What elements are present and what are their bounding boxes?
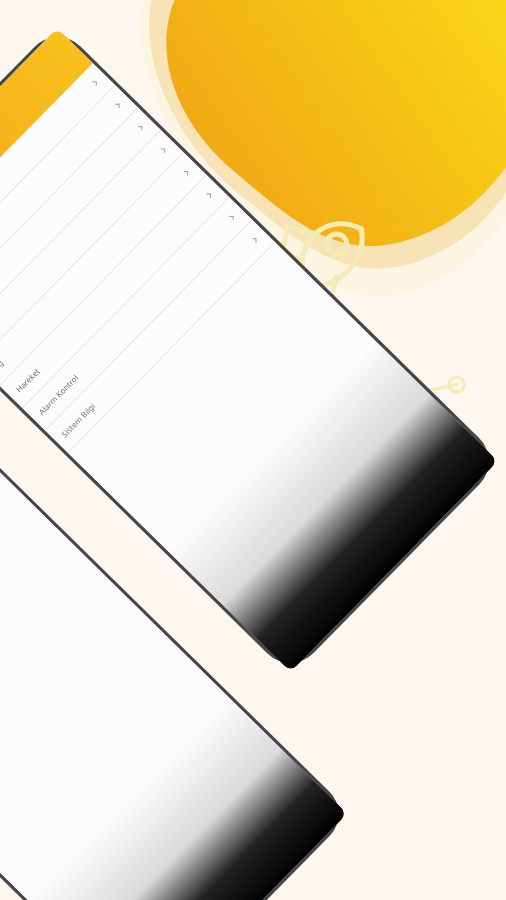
other: Open Alarm Kontrol xyxy=(227,212,237,222)
button[interactable]: Sistem Bilgi xyxy=(45,220,275,453)
other: Open xyxy=(136,123,146,132)
staticText: Alarm Kontrol xyxy=(36,371,81,417)
staticText: Sistem Bilgi xyxy=(59,400,97,439)
other: Open Hareket xyxy=(204,190,214,200)
button[interactable]: Open xyxy=(0,85,138,318)
button[interactable]: Open xyxy=(0,108,161,341)
button[interactable] xyxy=(0,28,93,274)
button[interactable]: Alarm Kontrol xyxy=(22,197,252,430)
other: Open xyxy=(90,78,100,88)
staticText: Hareket xyxy=(13,365,42,394)
other: Open Ağ xyxy=(182,167,191,177)
button[interactable]: Kayıt xyxy=(0,130,184,363)
button[interactable]: Hareket xyxy=(0,175,229,408)
button[interactable]: Open xyxy=(0,63,115,296)
other: Open xyxy=(113,100,123,110)
other: Open Kayıt xyxy=(159,145,169,155)
other: Open Sistem Bilgi xyxy=(250,235,260,245)
button[interactable]: Ağ xyxy=(0,153,206,385)
staticText: Ağ xyxy=(0,356,6,372)
